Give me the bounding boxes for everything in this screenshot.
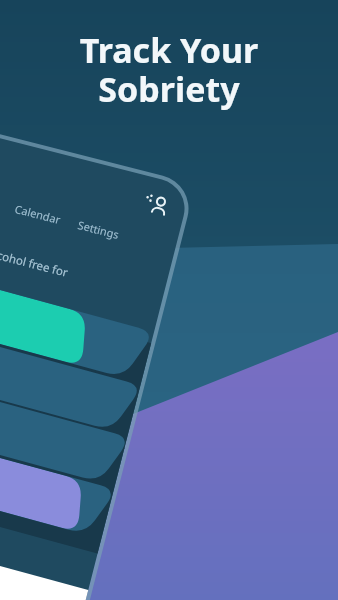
staticText: Settings — [76, 217, 121, 242]
staticText: Calendar — [13, 201, 62, 227]
button[interactable]: alcohol free for — [0, 245, 70, 281]
staticText: alcohol free for — [0, 245, 70, 281]
button[interactable]: Settings — [76, 217, 121, 242]
staticText: Track Your Sobriety — [0, 27, 338, 112]
button[interactable]: Profile — [141, 189, 172, 221]
button[interactable]: Calendar — [13, 201, 62, 227]
